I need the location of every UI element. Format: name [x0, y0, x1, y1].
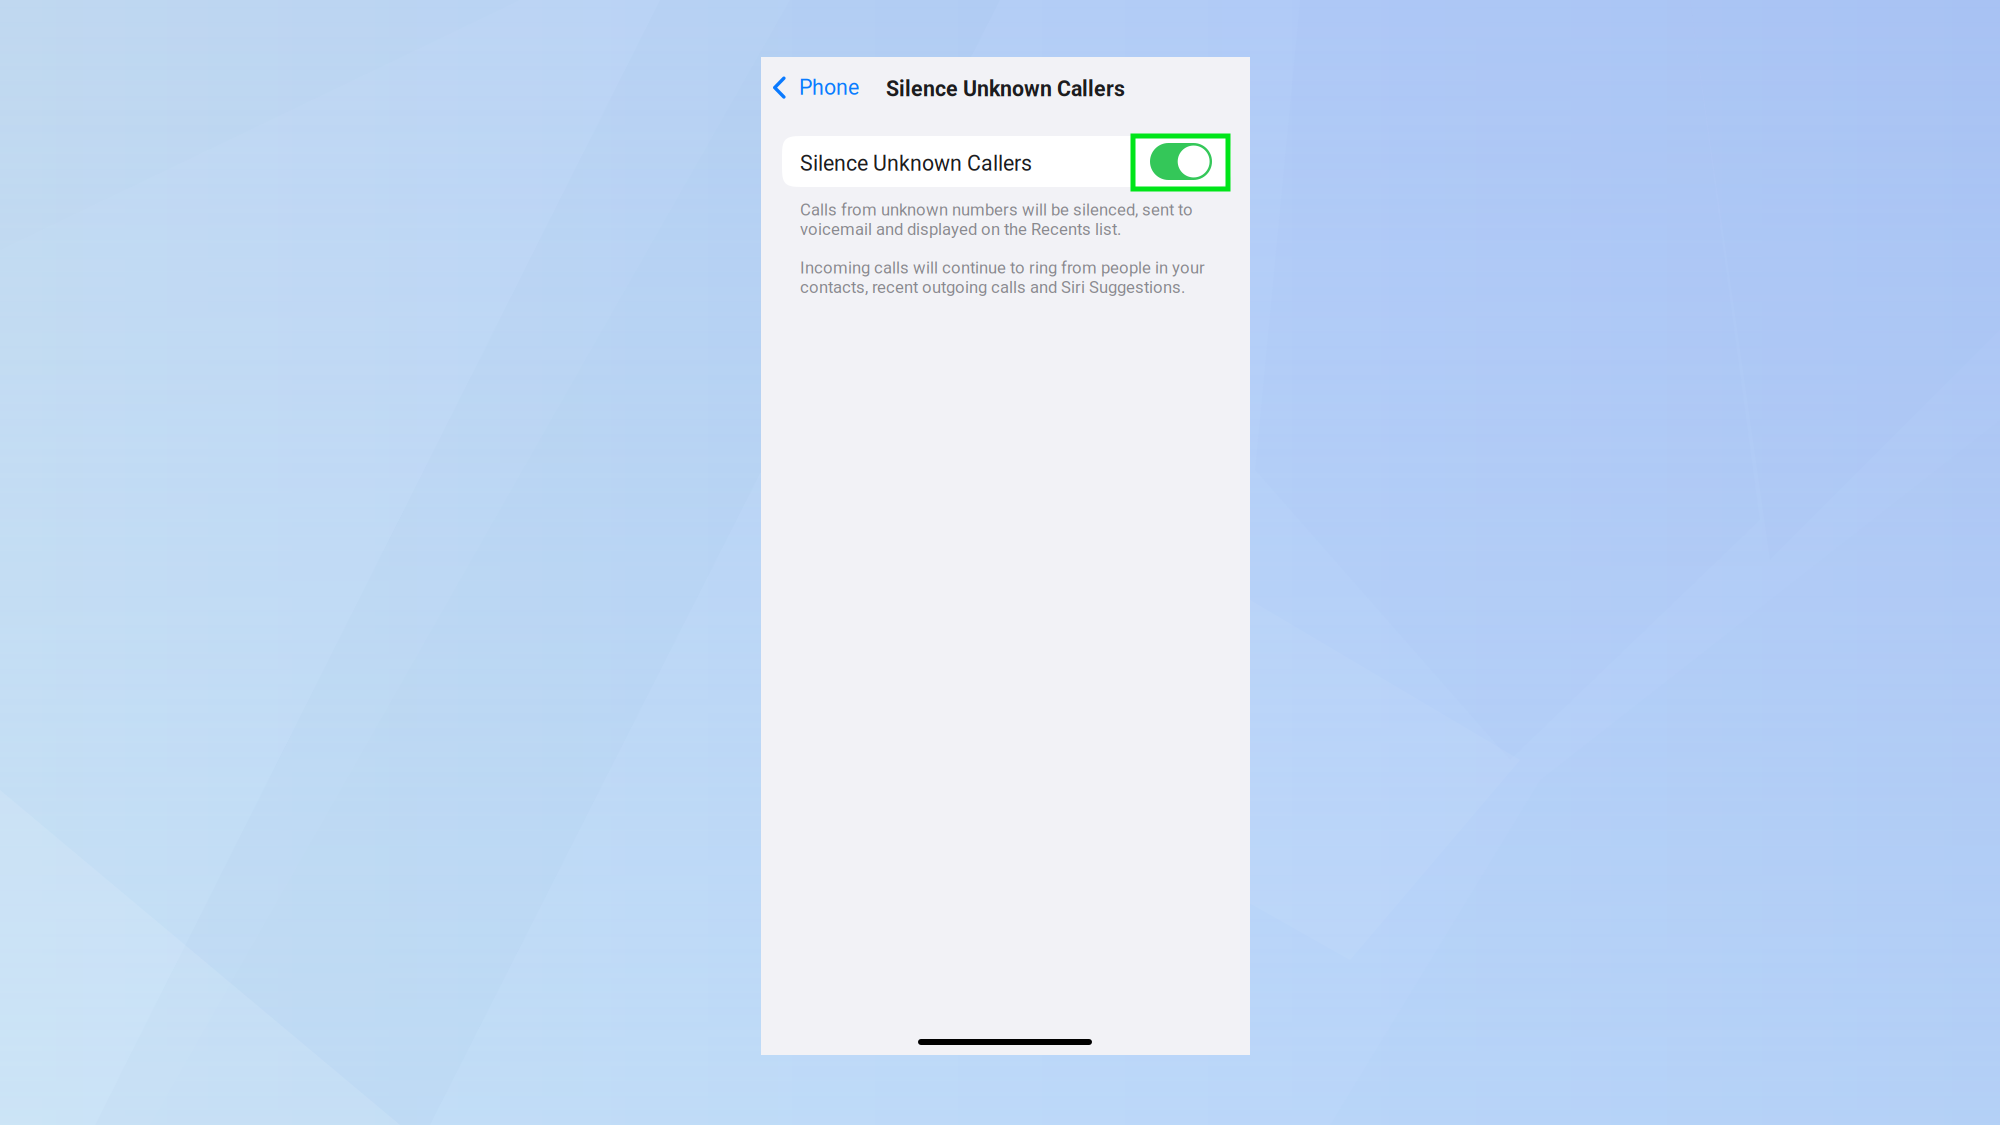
staticText: Calls from unknown numbers will be silen… [800, 200, 1193, 239]
staticText: Incoming calls will continue to ring fro… [800, 258, 1205, 297]
button[interactable]: Phone [761, 66, 869, 109]
staticText: Silence Unknown Callers [886, 76, 1125, 101]
staticText: Silence Unknown Callers [800, 151, 1032, 176]
button[interactable]: Silence Unknown Callers [782, 136, 1231, 187]
staticText: Phone [799, 75, 859, 100]
